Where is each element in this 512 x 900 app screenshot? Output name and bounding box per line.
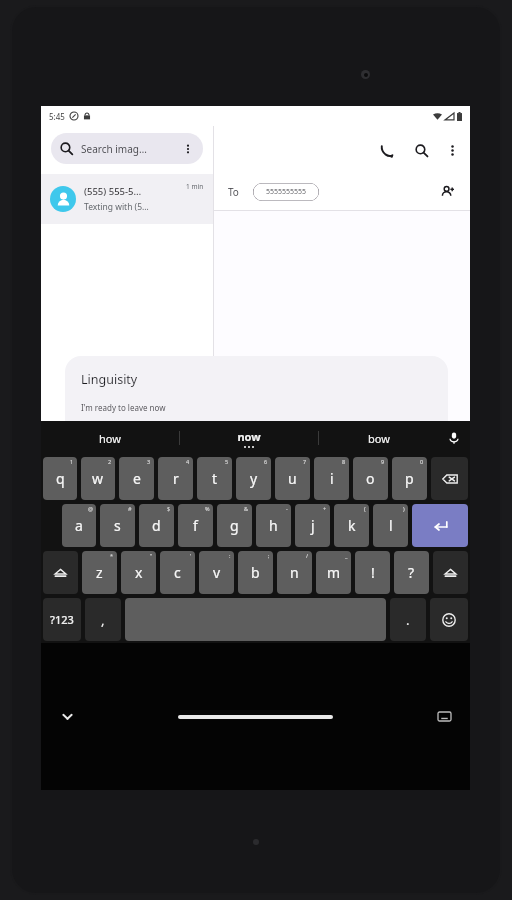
button[interactable]: ; [238, 551, 273, 594]
button[interactable]: 1 [43, 457, 77, 500]
staticText: e [133, 469, 141, 488]
button[interactable]: Comma [85, 598, 121, 641]
button[interactable]: how [41, 421, 179, 455]
button[interactable]: 2 [81, 457, 115, 500]
button[interactable]: # [100, 504, 135, 547]
staticText: Cancel [352, 487, 379, 499]
staticText: # [128, 505, 132, 512]
button[interactable]: 7 [275, 457, 310, 500]
staticText: " [150, 552, 153, 559]
button[interactable]: ? [394, 551, 429, 594]
button[interactable]: 4 [158, 457, 193, 500]
staticText: 9 [381, 458, 385, 465]
staticText: * [110, 552, 114, 559]
staticText: Linguisity [81, 371, 138, 388]
button[interactable]: + [295, 504, 330, 547]
staticText: @ [88, 505, 93, 512]
button[interactable]: now [180, 421, 318, 455]
staticText: I'm ready to leave now [81, 402, 166, 413]
button[interactable]: 5555555555 [253, 183, 319, 201]
staticText: 0 [420, 458, 424, 465]
staticText: ?123 [50, 612, 74, 627]
staticText: i [330, 469, 334, 488]
button[interactable]: More options [440, 138, 464, 162]
button[interactable]: / [277, 551, 312, 594]
button[interactable]: _ [316, 551, 351, 594]
button[interactable]: % [178, 504, 213, 547]
staticText: (555) 555-5… [84, 185, 142, 198]
staticText: z [96, 563, 103, 582]
staticText: 5 [225, 458, 229, 465]
button[interactable]: Call [374, 137, 400, 163]
button[interactable]: 0 [392, 457, 427, 500]
button[interactable]: * [82, 551, 117, 594]
button[interactable]: Backspace [431, 457, 468, 500]
button[interactable]: bow [319, 421, 438, 455]
button[interactable]: Voice input [438, 421, 470, 455]
staticText: 4 [186, 458, 190, 465]
staticText: q [56, 469, 65, 488]
button[interactable]: : [199, 551, 234, 594]
staticText: , [101, 611, 105, 629]
staticText: & [244, 505, 249, 512]
staticText: l [389, 516, 393, 535]
staticText: t [212, 469, 218, 488]
button[interactable]: @ [62, 504, 96, 547]
staticText: c [174, 563, 181, 582]
button[interactable]: Enter [412, 504, 468, 547]
button[interactable]: (555) 555-5… [41, 174, 213, 224]
staticText: ) [403, 505, 405, 512]
staticText: Search imag… [81, 142, 147, 156]
other: More options [182, 143, 194, 155]
staticText: / [306, 552, 309, 559]
button[interactable]: ! [355, 551, 390, 594]
button[interactable]: 3 [119, 457, 154, 500]
button[interactable]: Emoji [430, 598, 468, 641]
button[interactable]: ( [334, 504, 369, 547]
staticText: Texting with (5… [84, 201, 149, 213]
staticText: 2 [108, 458, 112, 465]
button[interactable]: Shift [433, 551, 468, 594]
staticText: now [237, 429, 261, 444]
staticText: b [251, 563, 260, 582]
staticText: 5:45 [49, 111, 65, 122]
button[interactable]: Switch keyboard [418, 643, 470, 790]
button[interactable]: " [121, 551, 156, 594]
staticText: ? [408, 563, 415, 582]
staticText: ; [268, 552, 270, 559]
staticText: d [152, 516, 161, 535]
button[interactable]: Apply [395, 483, 434, 503]
button[interactable]: Hide keyboard [41, 643, 93, 790]
button[interactable]: Period [390, 598, 426, 641]
staticText: ! [371, 563, 375, 582]
button[interactable]: & [217, 504, 252, 547]
button[interactable]: 9 [353, 457, 388, 500]
button[interactable]: 8 [314, 457, 349, 500]
button[interactable]: ' [160, 551, 195, 594]
staticText: _ [345, 552, 348, 559]
button[interactable]: Cancel [344, 483, 387, 503]
button[interactable]: Shift [43, 551, 78, 594]
button[interactable]: 6 [236, 457, 271, 500]
staticText: 3 [147, 458, 151, 465]
staticText: 6 [264, 458, 268, 465]
staticText: ( [364, 505, 366, 512]
button[interactable]: - [256, 504, 291, 547]
button[interactable]: Symbols [43, 598, 81, 641]
staticText: 1 min [186, 182, 204, 191]
staticText: : [229, 552, 231, 559]
staticText: h [269, 516, 278, 535]
staticText: . [406, 611, 410, 629]
staticText: ' [190, 552, 192, 559]
button[interactable]: Search [408, 137, 434, 163]
staticText: p [405, 469, 414, 488]
staticText: u [288, 469, 297, 488]
staticText: To [228, 185, 239, 199]
button[interactable]: ) [373, 504, 408, 547]
button[interactable]: Search imag… [51, 133, 203, 164]
button[interactable]: $ [139, 504, 174, 547]
staticText: 5555555555 [266, 187, 307, 197]
button[interactable]: Add recipient [436, 180, 460, 204]
button[interactable]: 5 [197, 457, 232, 500]
